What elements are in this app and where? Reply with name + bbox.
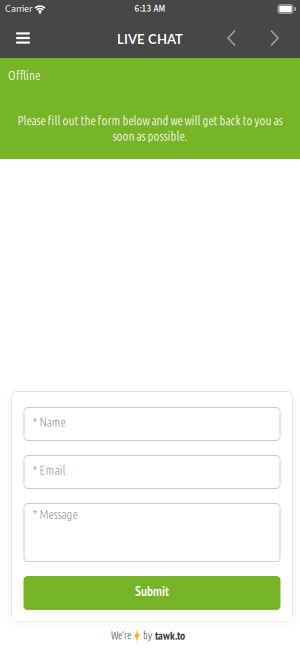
staticText: by xyxy=(143,630,152,641)
staticText: Offline xyxy=(8,68,40,82)
button[interactable]: Submit xyxy=(23,576,280,610)
button[interactable]: * Name xyxy=(23,407,280,441)
button[interactable]: We're powered by tawk.to xyxy=(113,628,187,643)
button[interactable]: * Email xyxy=(23,455,280,489)
staticText: 6:13 AM xyxy=(134,2,165,15)
button[interactable]: * Message xyxy=(23,503,280,562)
staticText: * Name xyxy=(32,415,65,429)
staticText: Carrier xyxy=(5,2,32,16)
staticText: soon as possible. xyxy=(112,129,187,143)
staticText: Please fill out the form below and we wi… xyxy=(17,113,282,128)
button[interactable]: Forward xyxy=(253,18,300,58)
staticText: We're xyxy=(111,630,131,641)
staticText: tawk.to xyxy=(155,628,185,643)
button[interactable]: Back xyxy=(210,18,253,58)
button[interactable]: Menu xyxy=(0,18,40,58)
staticText: * Message xyxy=(32,507,77,521)
staticText: Submit xyxy=(135,582,169,600)
staticText: * Email xyxy=(32,463,65,477)
staticText: LIVE CHAT xyxy=(117,31,183,47)
